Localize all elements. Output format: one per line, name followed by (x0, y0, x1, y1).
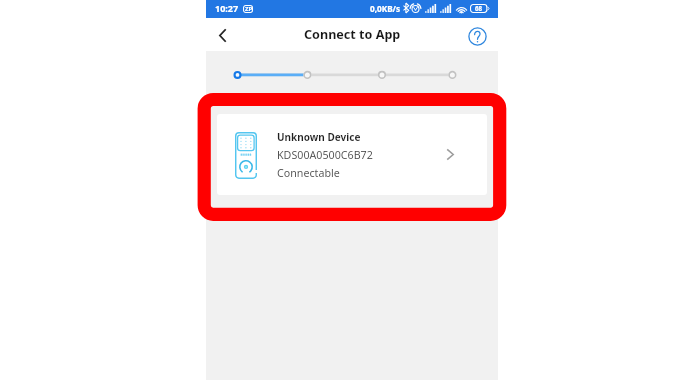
staticText: KDS00A0500C6B72 (277, 148, 373, 163)
staticText: Unknown Device (277, 130, 361, 144)
staticText: 10:27 (215, 2, 239, 14)
staticText: ZP (245, 5, 253, 13)
staticText: Connect to App (304, 26, 401, 43)
staticText: 0,0KB/s (370, 3, 401, 14)
button[interactable]: Unknown Device (217, 114, 487, 195)
staticText: Connectable (277, 166, 340, 181)
staticText: 68 (475, 4, 483, 12)
button[interactable]: Back (207, 20, 237, 50)
button[interactable]: Help (464, 23, 490, 49)
